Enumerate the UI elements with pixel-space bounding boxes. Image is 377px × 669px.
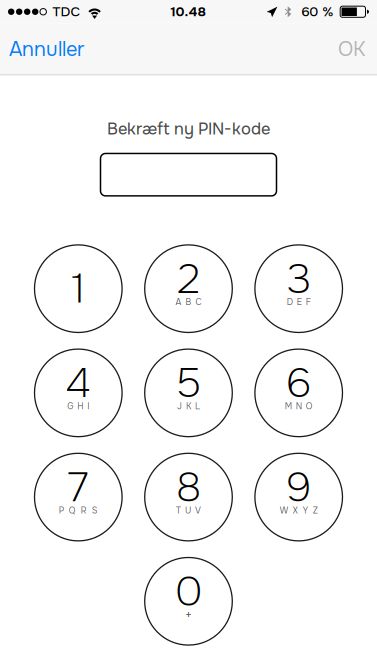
staticText: T U V [176, 505, 201, 516]
staticText: OK [338, 37, 365, 62]
staticText: A B C [175, 297, 201, 308]
staticText: 10.48 [170, 3, 206, 20]
staticText: 4 [65, 357, 91, 410]
staticText: G H I [67, 401, 89, 412]
staticText: Annuller [9, 37, 84, 62]
staticText: 8 [176, 461, 201, 514]
staticText: W X Y Z [280, 505, 318, 516]
button[interactable]: 1 [34, 245, 122, 332]
button[interactable]: 0 [145, 557, 232, 645]
staticText: 2 [177, 253, 200, 305]
button[interactable]: 7 [34, 453, 122, 541]
staticText: 6 [286, 357, 312, 410]
staticText: 3 [287, 253, 311, 305]
staticText: 5 [176, 357, 201, 410]
button[interactable]: 2 [145, 245, 232, 332]
button[interactable]: 5 [145, 349, 232, 437]
staticText: 7 [68, 461, 89, 514]
staticText: TDC [52, 3, 80, 20]
button[interactable]: 9 [255, 453, 342, 541]
staticText: Bekræft ny PIN-kode [107, 118, 270, 139]
staticText: 1 [71, 262, 85, 315]
button[interactable]: OK [326, 23, 377, 75]
button[interactable]: 3 [255, 245, 342, 332]
button[interactable]: Annuller [0, 23, 93, 75]
button[interactable]: 6 [255, 349, 342, 437]
staticText: J K L [177, 401, 200, 412]
staticText: 60 % [301, 3, 333, 20]
staticText: M N O [285, 401, 313, 412]
staticText: + [185, 607, 192, 623]
staticText: D E F [287, 297, 311, 308]
staticText: 9 [286, 461, 312, 514]
button[interactable]: 8 [145, 453, 232, 541]
button[interactable]: 4 [34, 349, 122, 437]
staticText: 0 [175, 565, 202, 618]
staticText: P Q R S [59, 505, 98, 516]
